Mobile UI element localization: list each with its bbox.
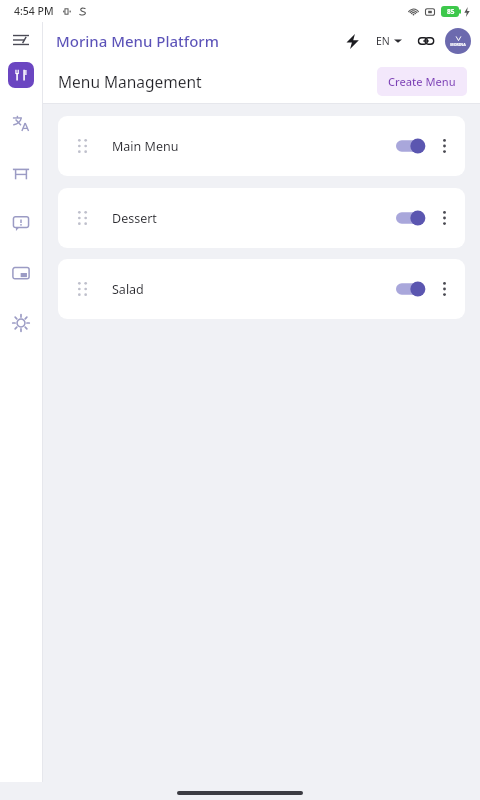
button[interactable]: Toggle Dessert [391, 204, 429, 232]
button[interactable]: Toggle Main Menu [391, 132, 429, 160]
button[interactable]: Quick actions [339, 28, 365, 54]
button[interactable]: Settings [4, 306, 38, 340]
staticText: Create Menu [388, 74, 456, 89]
staticText: 4:54 PM [14, 4, 54, 18]
button[interactable]: Copy link [413, 28, 439, 54]
staticText: Dessert [112, 210, 391, 227]
staticText: Main Menu [112, 138, 391, 155]
button[interactable]: More options for Main Menu [429, 131, 459, 161]
button[interactable]: Reorder Main Menu [69, 133, 95, 159]
button[interactable]: Toggle Salad [391, 275, 429, 303]
button[interactable]: Reorder Main Menu [58, 116, 465, 176]
button[interactable]: Tables [4, 156, 38, 190]
button[interactable]: More options for Salad [429, 274, 459, 304]
button[interactable]: Reorder Salad [58, 259, 465, 319]
button[interactable]: Banners [4, 256, 38, 290]
staticText: Morina Menu Platform [56, 31, 219, 51]
staticText: MORINA [450, 42, 466, 47]
staticText: Menu Management [58, 71, 202, 92]
button[interactable]: Profile [445, 28, 471, 54]
button[interactable]: Menus [8, 62, 34, 88]
staticText: 85 [447, 7, 455, 16]
button[interactable]: Reorder Dessert [69, 205, 95, 231]
staticText: EN [376, 34, 390, 48]
button[interactable]: Translate [4, 106, 38, 140]
button[interactable]: Reorder Dessert [58, 188, 465, 248]
button[interactable]: More options for Dessert [429, 203, 459, 233]
button[interactable]: Menu [0, 22, 42, 58]
button[interactable]: Create Menu [377, 67, 467, 96]
button[interactable]: Feedback [4, 206, 38, 240]
button[interactable]: Reorder Salad [69, 276, 95, 302]
button[interactable]: EN [373, 30, 405, 52]
staticText: Salad [112, 281, 391, 298]
